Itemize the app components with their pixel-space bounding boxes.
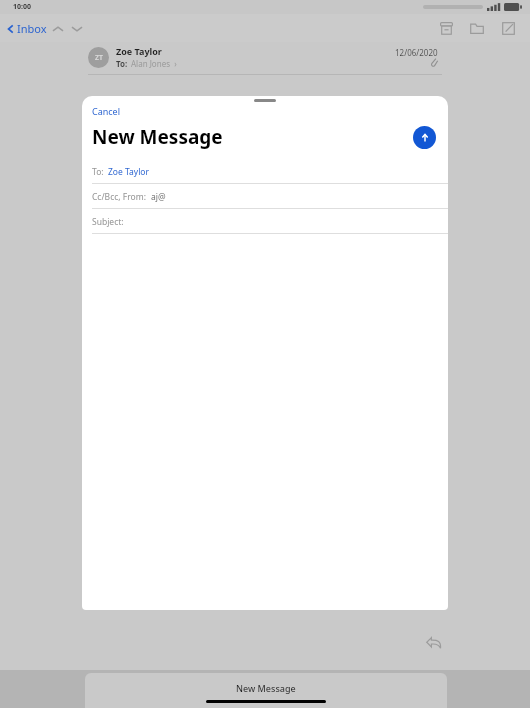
- button[interactable]: New Message: [85, 673, 447, 708]
- button[interactable]: Inbox: [6, 21, 47, 36]
- button[interactable]: Subject:: [82, 209, 448, 234]
- button[interactable]: Compose: [495, 15, 521, 41]
- staticText: To:: [92, 166, 104, 178]
- button[interactable]: To:: [82, 159, 448, 184]
- staticText: 12/06/2020: [395, 47, 438, 58]
- staticText: ZT: [95, 53, 103, 63]
- staticText: 10:00: [13, 2, 31, 12]
- button[interactable]: Archive: [433, 15, 459, 41]
- button[interactable]: ZT: [88, 45, 388, 69]
- staticText: New Message: [236, 682, 296, 694]
- staticText: To:: [116, 58, 128, 69]
- staticText: Cancel: [92, 105, 121, 117]
- staticText: Cc/Bcc, From:: [92, 191, 146, 203]
- button[interactable]: Send: [413, 126, 436, 149]
- button[interactable]: Cc/Bcc, From:: [82, 184, 448, 209]
- button[interactable]: Next message: [66, 18, 87, 39]
- staticText: Zoe Taylor: [108, 166, 150, 178]
- staticText: Subject:: [92, 216, 124, 228]
- button[interactable]: Previous message: [47, 18, 68, 39]
- button[interactable]: Cancel: [92, 105, 121, 117]
- button[interactable]: Reply: [420, 629, 446, 655]
- staticText: Zoe Taylor: [116, 45, 162, 57]
- staticText: New Message: [92, 124, 223, 150]
- button[interactable]: Move to folder: [464, 15, 490, 41]
- staticText: Alan Jones ›: [131, 58, 177, 69]
- staticText: aj@: [151, 191, 166, 203]
- staticText: Inbox: [17, 21, 47, 36]
